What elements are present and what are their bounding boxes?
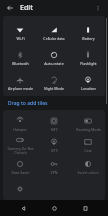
staticText: Invert colors (77, 170, 99, 175)
button[interactable]: Wi-Fi (3, 20, 37, 46)
staticText: Battery (82, 36, 95, 41)
button[interactable]: Gaming Do Not Disturb (3, 135, 37, 156)
button[interactable]: More options (92, 2, 104, 14)
staticText: Night Mode (44, 86, 64, 91)
button[interactable]: Flashlight (71, 46, 105, 71)
button[interactable]: Auto-rotate (37, 46, 71, 71)
button[interactable]: VPN (37, 156, 71, 178)
button[interactable]: Night Mode (37, 71, 71, 96)
button[interactable]: BT5 (37, 135, 71, 156)
staticText: Drag to add tiles (8, 100, 48, 107)
button[interactable]: Reading Mode (71, 114, 105, 135)
staticText: Wi-Fi (16, 36, 25, 41)
button[interactable]: Tile (3, 178, 37, 200)
staticText: Edit (20, 3, 33, 13)
staticText: Reading Mode (76, 127, 101, 132)
staticText: Flashlight (80, 61, 97, 66)
button[interactable]: Invert colors (71, 156, 105, 178)
staticText: Location (81, 86, 96, 91)
button[interactable]: Recent apps (77, 200, 93, 216)
button[interactable]: Hotspot (3, 114, 37, 135)
button[interactable]: Data Saver (3, 156, 37, 178)
button[interactable]: NFC (37, 114, 71, 135)
staticText: BT5 (51, 148, 58, 153)
staticText: Bluetooth (12, 61, 29, 66)
button[interactable]: Cast (71, 135, 105, 156)
staticText: Cellular data (43, 36, 65, 41)
staticText: Airplane mode (8, 86, 33, 91)
button[interactable]: Home (46, 200, 62, 216)
button[interactable]: Cellular data (37, 20, 71, 46)
button[interactable]: Back (15, 200, 31, 216)
staticText: VPN (50, 170, 58, 175)
staticText: Hotspot (13, 127, 27, 132)
staticText: NFC (51, 127, 58, 132)
staticText: Auto-rotate (44, 61, 64, 66)
staticText: Data Saver (11, 170, 30, 175)
staticText: Gaming Do Not Disturb (7, 146, 34, 155)
button[interactable]: Back (4, 2, 16, 14)
staticText: Cast (84, 148, 92, 153)
button[interactable]: Location (71, 71, 105, 96)
button[interactable]: Airplane mode (3, 71, 37, 96)
button[interactable]: Bluetooth (3, 46, 37, 71)
button[interactable]: Battery (71, 20, 105, 46)
